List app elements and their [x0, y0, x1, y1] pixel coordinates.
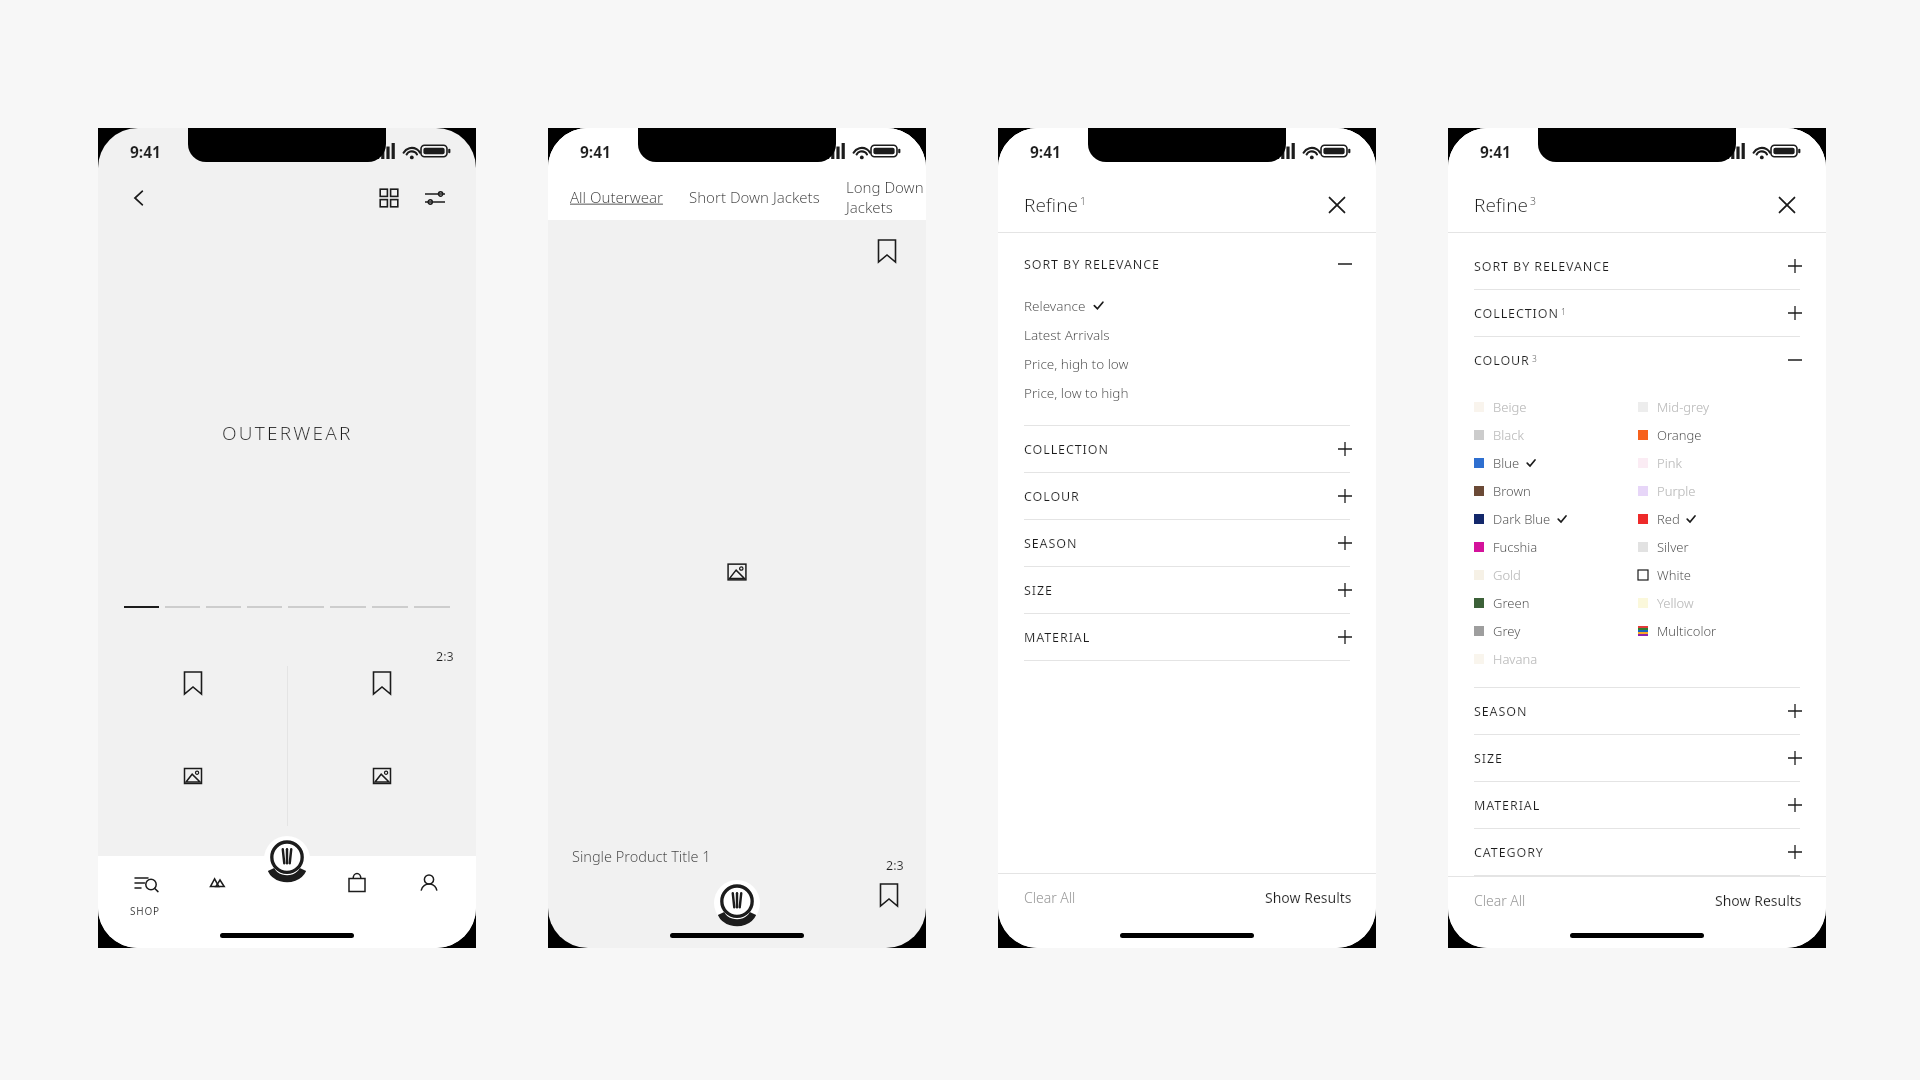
- staticText: Blue: [1493, 454, 1520, 472]
- button[interactable]: Green: [1474, 589, 1638, 617]
- button[interactable]: Black: [1474, 421, 1638, 449]
- staticText: 1: [1080, 194, 1086, 208]
- button[interactable]: Havana: [1474, 645, 1638, 673]
- button[interactable]: White: [1638, 561, 1802, 589]
- staticText: SHOP: [130, 904, 160, 918]
- button[interactable]: Bag: [331, 868, 383, 898]
- button[interactable]: Brown: [1474, 477, 1638, 505]
- staticText: White: [1657, 566, 1692, 584]
- button[interactable]: Clear All: [1024, 888, 1076, 907]
- button[interactable]: Relevance: [998, 291, 1376, 320]
- staticText: CATEGORY: [1474, 844, 1544, 861]
- button[interactable]: Save: [365, 666, 399, 700]
- button[interactable]: Purple: [1638, 477, 1802, 505]
- button[interactable]: Moncler home: [264, 836, 310, 882]
- button[interactable]: SHOP: [119, 868, 171, 918]
- button[interactable]: Account: [403, 868, 455, 898]
- staticText: 2:3: [436, 648, 454, 665]
- staticText: Refine: [1024, 192, 1078, 218]
- button[interactable]: Red: [1638, 505, 1802, 533]
- button[interactable]: COLOUR: [998, 473, 1376, 519]
- button[interactable]: MATERIAL: [1448, 782, 1826, 828]
- button[interactable]: SIZE: [1448, 735, 1826, 781]
- button[interactable]: Orange: [1638, 421, 1802, 449]
- staticText: Silver: [1657, 538, 1689, 556]
- staticText: Mid-grey: [1657, 398, 1709, 416]
- button[interactable]: SIZE: [998, 567, 1376, 613]
- staticText: SEASON: [1474, 703, 1528, 720]
- staticText: Gold: [1493, 566, 1521, 584]
- button[interactable]: COLLECTION: [998, 426, 1376, 472]
- button[interactable]: Save: [176, 666, 210, 700]
- button[interactable]: Show Results: [1715, 891, 1802, 910]
- button[interactable]: Blue: [1474, 449, 1638, 477]
- staticText: OUTERWEAR: [222, 420, 353, 446]
- button[interactable]: Price, high to low: [998, 349, 1376, 378]
- button[interactable]: SORT BY RELEVANCE: [998, 241, 1376, 287]
- button[interactable]: Silver: [1638, 533, 1802, 561]
- button[interactable]: Price, low to high: [998, 378, 1376, 407]
- button[interactable]: CATEGORY: [1448, 829, 1826, 875]
- staticText: 9:41: [130, 141, 161, 162]
- button[interactable]: COLOUR: [1448, 337, 1826, 383]
- button[interactable]: MATERIAL: [998, 614, 1376, 660]
- button[interactable]: Save: [870, 234, 904, 268]
- staticText: Refine: [1474, 192, 1528, 218]
- staticText: SIZE: [1474, 750, 1503, 767]
- button[interactable]: Moncler home: [714, 880, 760, 926]
- staticText: Grey: [1493, 622, 1521, 640]
- staticText: SEASON: [1024, 535, 1078, 552]
- staticText: Latest Arrivals: [1024, 326, 1110, 344]
- staticText: Relevance: [1024, 297, 1086, 315]
- button[interactable]: Mid-grey: [1638, 393, 1802, 421]
- staticText: Red: [1657, 510, 1680, 528]
- button[interactable]: Show Results: [1265, 888, 1352, 907]
- button[interactable]: Grey: [1474, 617, 1638, 645]
- staticText: COLOUR: [1474, 352, 1530, 369]
- button[interactable]: All Outerwear: [570, 187, 663, 207]
- staticText: Pink: [1657, 454, 1682, 472]
- staticText: 1: [1561, 306, 1566, 318]
- staticText: COLLECTION: [1474, 305, 1559, 322]
- staticText: Single Product Title 1: [572, 846, 711, 866]
- button[interactable]: Beige: [1474, 393, 1638, 421]
- button[interactable]: Yellow: [1638, 589, 1802, 617]
- staticText: Brown: [1493, 482, 1531, 500]
- staticText: 9:41: [1480, 141, 1511, 162]
- button[interactable]: Pink: [1638, 449, 1802, 477]
- staticText: Purple: [1657, 482, 1696, 500]
- staticText: MATERIAL: [1474, 797, 1541, 814]
- button[interactable]: Fucshia: [1474, 533, 1638, 561]
- button[interactable]: SEASON: [998, 520, 1376, 566]
- button[interactable]: Gold: [1474, 561, 1638, 589]
- staticText: Yellow: [1657, 594, 1694, 612]
- button[interactable]: Close: [1320, 188, 1354, 222]
- staticText: Black: [1493, 426, 1524, 444]
- button[interactable]: Close: [1770, 188, 1804, 222]
- staticText: COLLECTION: [1024, 441, 1109, 458]
- button[interactable]: Dark Blue: [1474, 505, 1638, 533]
- button[interactable]: COLLECTION: [1448, 290, 1826, 336]
- button[interactable]: Multicolor: [1638, 617, 1802, 645]
- staticText: SIZE: [1024, 582, 1053, 599]
- button[interactable]: Long Down Jackets: [846, 177, 926, 217]
- staticText: Multicolor: [1657, 622, 1717, 640]
- button[interactable]: Grid view: [372, 181, 406, 215]
- button[interactable]: Save: [872, 878, 906, 912]
- button[interactable]: Latest Arrivals: [998, 320, 1376, 349]
- staticText: 9:41: [580, 141, 611, 162]
- button[interactable]: SEASON: [1448, 688, 1826, 734]
- button[interactable]: Back: [122, 181, 156, 215]
- button[interactable]: Clear All: [1474, 891, 1526, 910]
- button[interactable]: Filter: [418, 181, 452, 215]
- staticText: Orange: [1657, 426, 1702, 444]
- staticText: SORT BY RELEVANCE: [1474, 258, 1610, 275]
- button[interactable]: Collections: [191, 868, 243, 898]
- button[interactable]: Short Down Jackets: [689, 187, 820, 207]
- staticText: 9:41: [1030, 141, 1061, 162]
- staticText: SORT BY RELEVANCE: [1024, 256, 1160, 273]
- button[interactable]: SORT BY RELEVANCE: [1448, 243, 1826, 289]
- staticText: 3: [1530, 194, 1536, 208]
- staticText: 3: [1532, 353, 1537, 365]
- staticText: Price, low to high: [1024, 384, 1129, 402]
